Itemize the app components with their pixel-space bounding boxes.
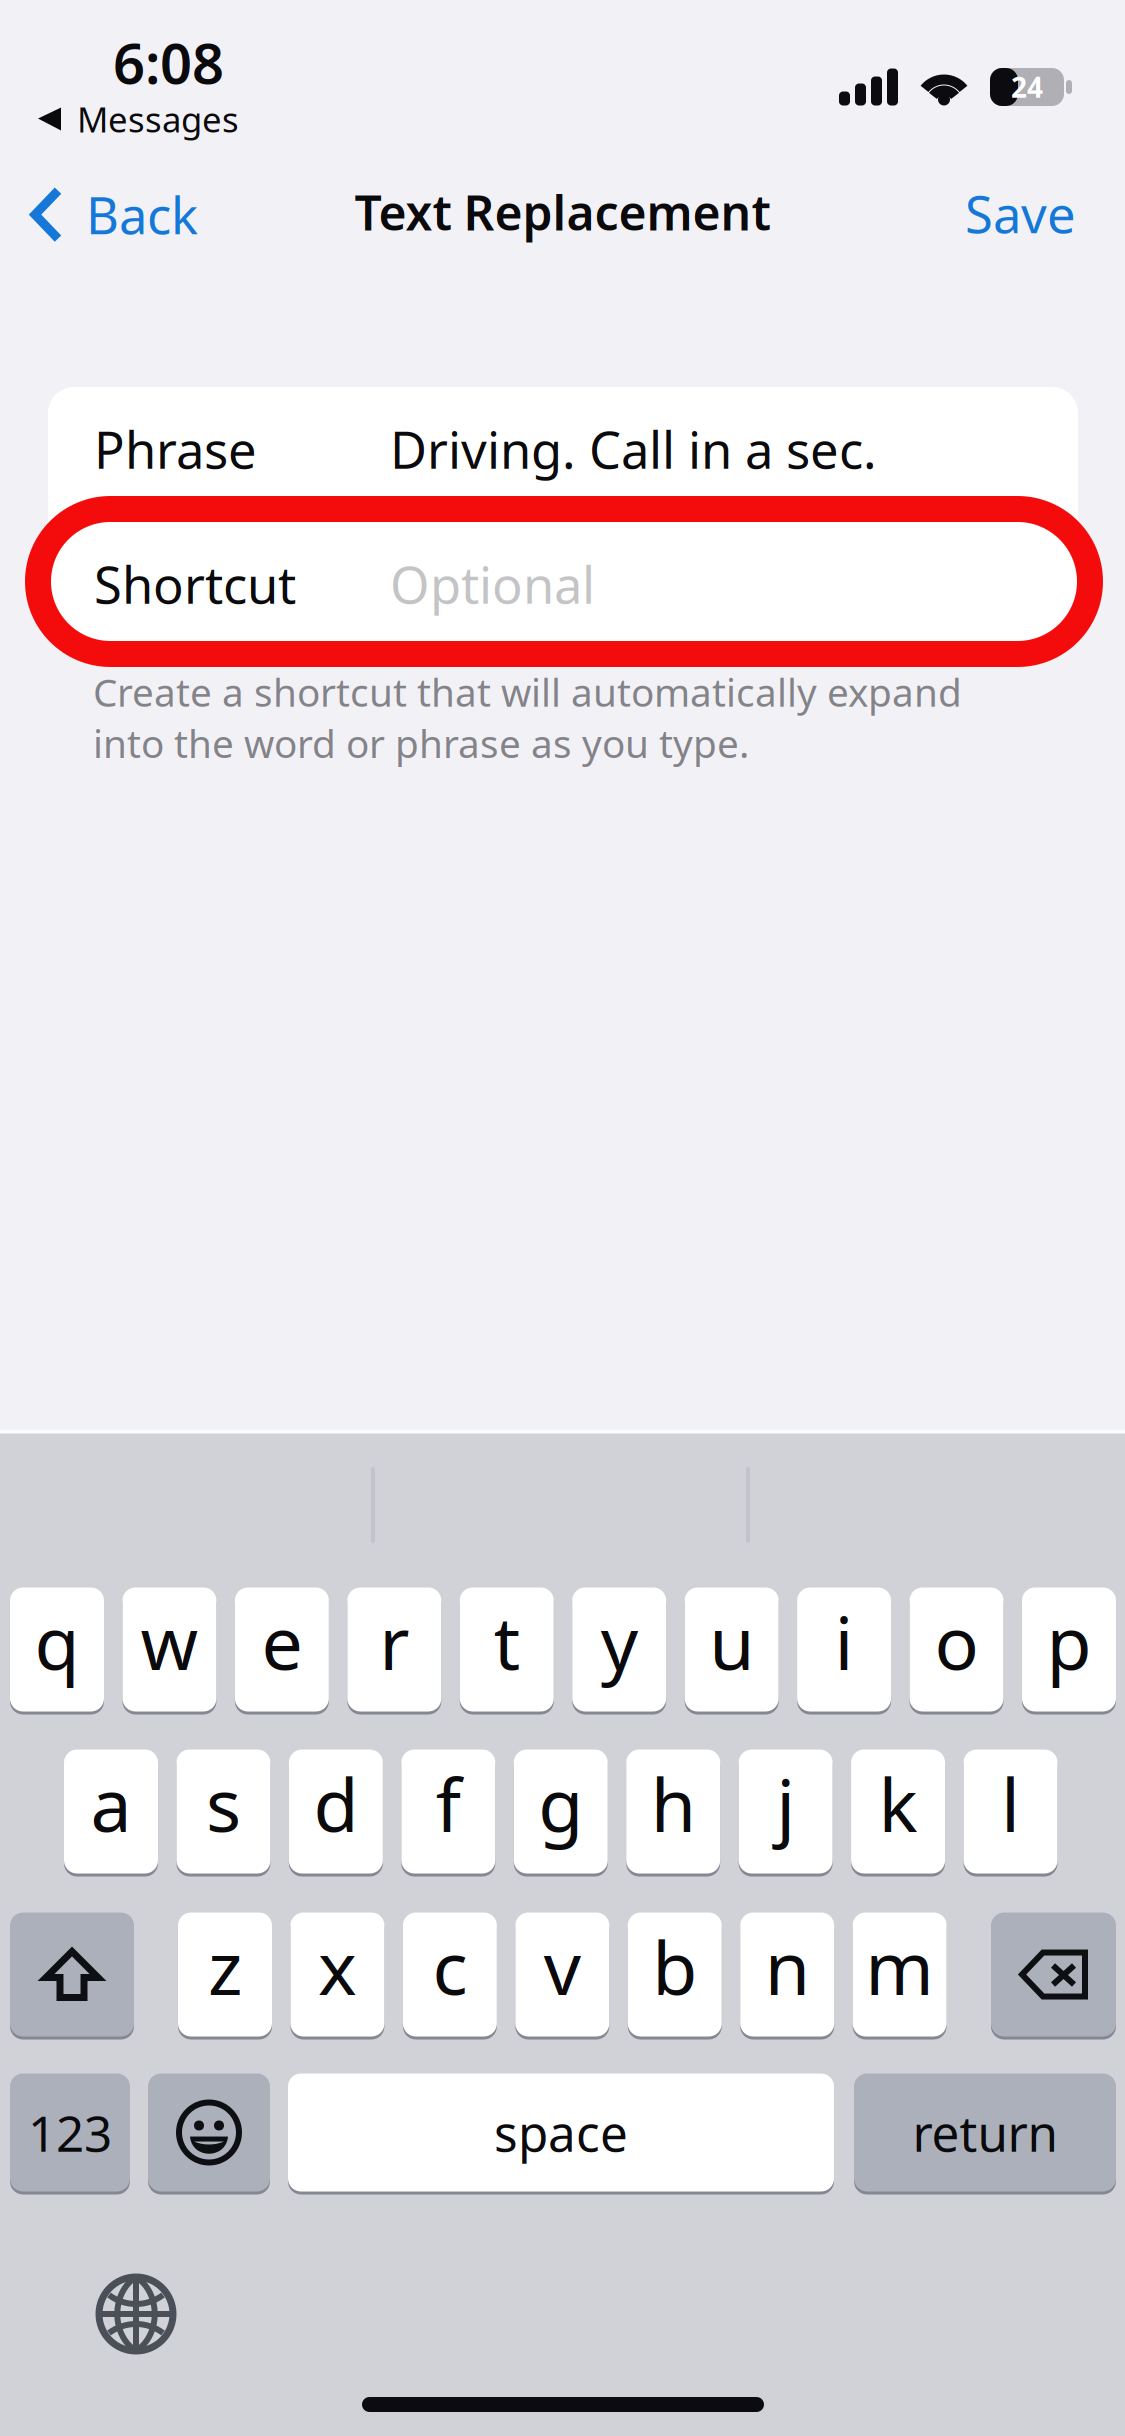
button[interactable]: Switch keyboard bbox=[96, 2274, 176, 2354]
button[interactable]: n bbox=[740, 1911, 834, 2038]
staticText: w bbox=[140, 1593, 198, 1690]
button[interactable]: return bbox=[854, 2072, 1116, 2193]
staticText: Save bbox=[965, 180, 1076, 247]
button[interactable]: r bbox=[347, 1586, 441, 1713]
button[interactable]: z bbox=[178, 1911, 272, 2038]
button[interactable]: m bbox=[853, 1911, 947, 2038]
staticText: 6:08 bbox=[113, 25, 224, 99]
staticText: z bbox=[208, 1918, 242, 2015]
staticText: v bbox=[544, 1918, 581, 2015]
button[interactable]: s bbox=[176, 1748, 270, 1875]
button[interactable]: b bbox=[628, 1911, 722, 2038]
button[interactable]: h bbox=[626, 1748, 720, 1875]
button[interactable]: l bbox=[963, 1748, 1057, 1875]
staticText: j bbox=[776, 1755, 795, 1852]
staticText: u bbox=[709, 1593, 754, 1690]
button[interactable]: Shortcut bbox=[0, 517, 1078, 651]
button[interactable]: Messages bbox=[30, 88, 247, 150]
button[interactable]: f bbox=[401, 1748, 495, 1875]
staticText: p bbox=[1046, 1593, 1091, 1690]
staticText: Back bbox=[86, 181, 198, 248]
staticText: s bbox=[206, 1755, 241, 1852]
button[interactable]: q bbox=[10, 1586, 104, 1713]
button[interactable]: Save bbox=[943, 162, 1098, 265]
button[interactable]: d bbox=[289, 1748, 383, 1875]
button[interactable]: i bbox=[797, 1586, 891, 1713]
button[interactable]: y bbox=[572, 1586, 666, 1713]
button[interactable]: o bbox=[909, 1586, 1003, 1713]
button[interactable]: Shift bbox=[10, 1911, 134, 2038]
button[interactable]: w bbox=[122, 1586, 216, 1713]
staticText: i bbox=[835, 1593, 854, 1690]
button[interactable]: a bbox=[64, 1748, 158, 1875]
staticText: Messages bbox=[77, 96, 239, 142]
button[interactable]: x bbox=[290, 1911, 384, 2038]
button[interactable]: e bbox=[235, 1586, 329, 1713]
button[interactable]: Phrase bbox=[0, 387, 1078, 521]
button[interactable]: g bbox=[514, 1748, 608, 1875]
staticText: x bbox=[318, 1918, 357, 2015]
staticText: f bbox=[436, 1755, 461, 1852]
staticText: b bbox=[652, 1918, 697, 2015]
staticText: return bbox=[912, 2100, 1057, 2165]
staticText: k bbox=[879, 1755, 918, 1852]
staticText: 123 bbox=[28, 2100, 112, 2165]
button[interactable]: 123 bbox=[10, 2072, 130, 2193]
staticText: Text Replacement bbox=[354, 180, 770, 244]
button[interactable]: Emoji bbox=[148, 2072, 270, 2193]
staticText: d bbox=[313, 1755, 358, 1852]
staticText: o bbox=[934, 1593, 978, 1690]
button[interactable]: t bbox=[460, 1586, 554, 1713]
staticText: l bbox=[1001, 1755, 1020, 1852]
staticText: Driving. Call in a sec. bbox=[390, 415, 877, 483]
staticText: Phrase bbox=[94, 415, 257, 483]
staticText: c bbox=[432, 1918, 467, 2015]
button[interactable]: p bbox=[1022, 1586, 1116, 1713]
staticText: Shortcut bbox=[94, 550, 296, 618]
button[interactable]: Delete bbox=[991, 1911, 1116, 2038]
staticText: Create a shortcut that will automaticall… bbox=[93, 666, 962, 769]
staticText: t bbox=[494, 1593, 520, 1690]
staticText: Optional bbox=[390, 550, 595, 618]
staticText: n bbox=[765, 1918, 810, 2015]
staticText: 24 bbox=[1011, 68, 1043, 106]
staticText: y bbox=[601, 1593, 638, 1690]
staticText: a bbox=[90, 1755, 131, 1852]
staticText: q bbox=[34, 1593, 79, 1690]
staticText: r bbox=[379, 1593, 409, 1690]
staticText: h bbox=[651, 1755, 696, 1852]
staticText: g bbox=[538, 1755, 583, 1852]
button[interactable]: k bbox=[851, 1748, 945, 1875]
staticText: e bbox=[261, 1593, 302, 1690]
button[interactable]: v bbox=[515, 1911, 609, 2038]
button[interactable]: space bbox=[288, 2072, 834, 2193]
button[interactable]: c bbox=[403, 1911, 497, 2038]
button[interactable]: u bbox=[685, 1586, 779, 1713]
button[interactable]: j bbox=[739, 1748, 833, 1875]
button[interactable]: Back bbox=[15, 167, 212, 262]
staticText: space bbox=[494, 2100, 628, 2165]
staticText: m bbox=[865, 1918, 934, 2015]
